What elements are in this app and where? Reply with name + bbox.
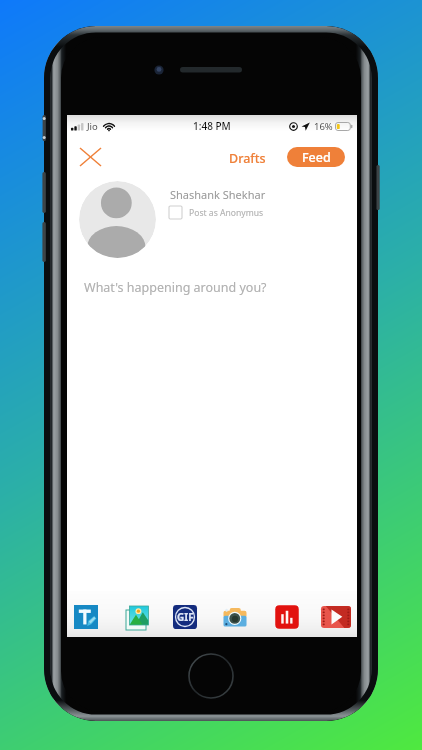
staticText: 1:48 PM (193, 119, 231, 133)
staticText: Feed (302, 149, 331, 166)
staticText: Shashank Shekhar (170, 187, 266, 202)
staticText: What's happening around you? (84, 279, 267, 296)
button[interactable]: Drafts (226, 144, 268, 172)
button[interactable]: Post as Anonymus (167, 206, 264, 219)
button[interactable]: Feed (287, 147, 345, 167)
staticText: 16% (314, 120, 333, 133)
staticText: GIF (177, 610, 194, 624)
button[interactable]: GIF (166, 594, 204, 640)
staticText: Post as Anonymus (189, 207, 264, 219)
button[interactable]: Poll (268, 594, 306, 640)
button[interactable]: Close (73, 143, 107, 171)
button[interactable]: Video (317, 594, 355, 640)
button[interactable]: Camera (216, 594, 254, 640)
staticText: Jio (87, 120, 98, 133)
button[interactable]: Text (67, 594, 105, 640)
button[interactable]: Gallery (118, 594, 156, 640)
staticText: Drafts (229, 150, 266, 167)
